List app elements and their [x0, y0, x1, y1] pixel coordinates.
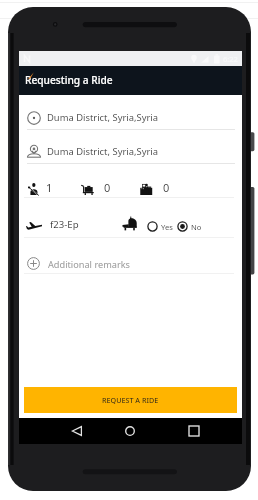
staticText: 0: [104, 180, 111, 195]
button[interactable]: Back: [58, 418, 96, 444]
button[interactable]: Yes: [147, 221, 158, 232]
button[interactable]: Requesting a Ride: [19, 66, 242, 95]
button[interactable]: 1: [19, 163, 242, 197]
button[interactable]: f23-Ep: [19, 198, 242, 238]
button[interactable]: Additional remarks: [19, 238, 242, 274]
button[interactable]: REQUEST A RIDE: [24, 387, 237, 413]
staticText: 0: [163, 180, 170, 195]
staticText: Requesting a Ride: [25, 73, 113, 87]
button[interactable]: Recents: [175, 418, 213, 444]
staticText: f23-Ep: [50, 218, 79, 231]
button[interactable]: Duma District, Syria,Syria: [19, 97, 242, 130]
staticText: Duma District, Syria,Syria: [47, 111, 159, 124]
staticText: Duma District, Syria,Syria: [47, 145, 159, 158]
staticText: No: [191, 222, 202, 232]
staticText: Additional remarks: [48, 258, 131, 271]
staticText: Yes: [161, 222, 173, 232]
staticText: REQUEST A RIDE: [102, 395, 159, 405]
button[interactable]: Duma District, Syria,Syria: [19, 130, 242, 163]
staticText: 1: [46, 180, 53, 195]
button[interactable]: Home: [111, 418, 149, 444]
button[interactable]: No: [177, 221, 188, 232]
